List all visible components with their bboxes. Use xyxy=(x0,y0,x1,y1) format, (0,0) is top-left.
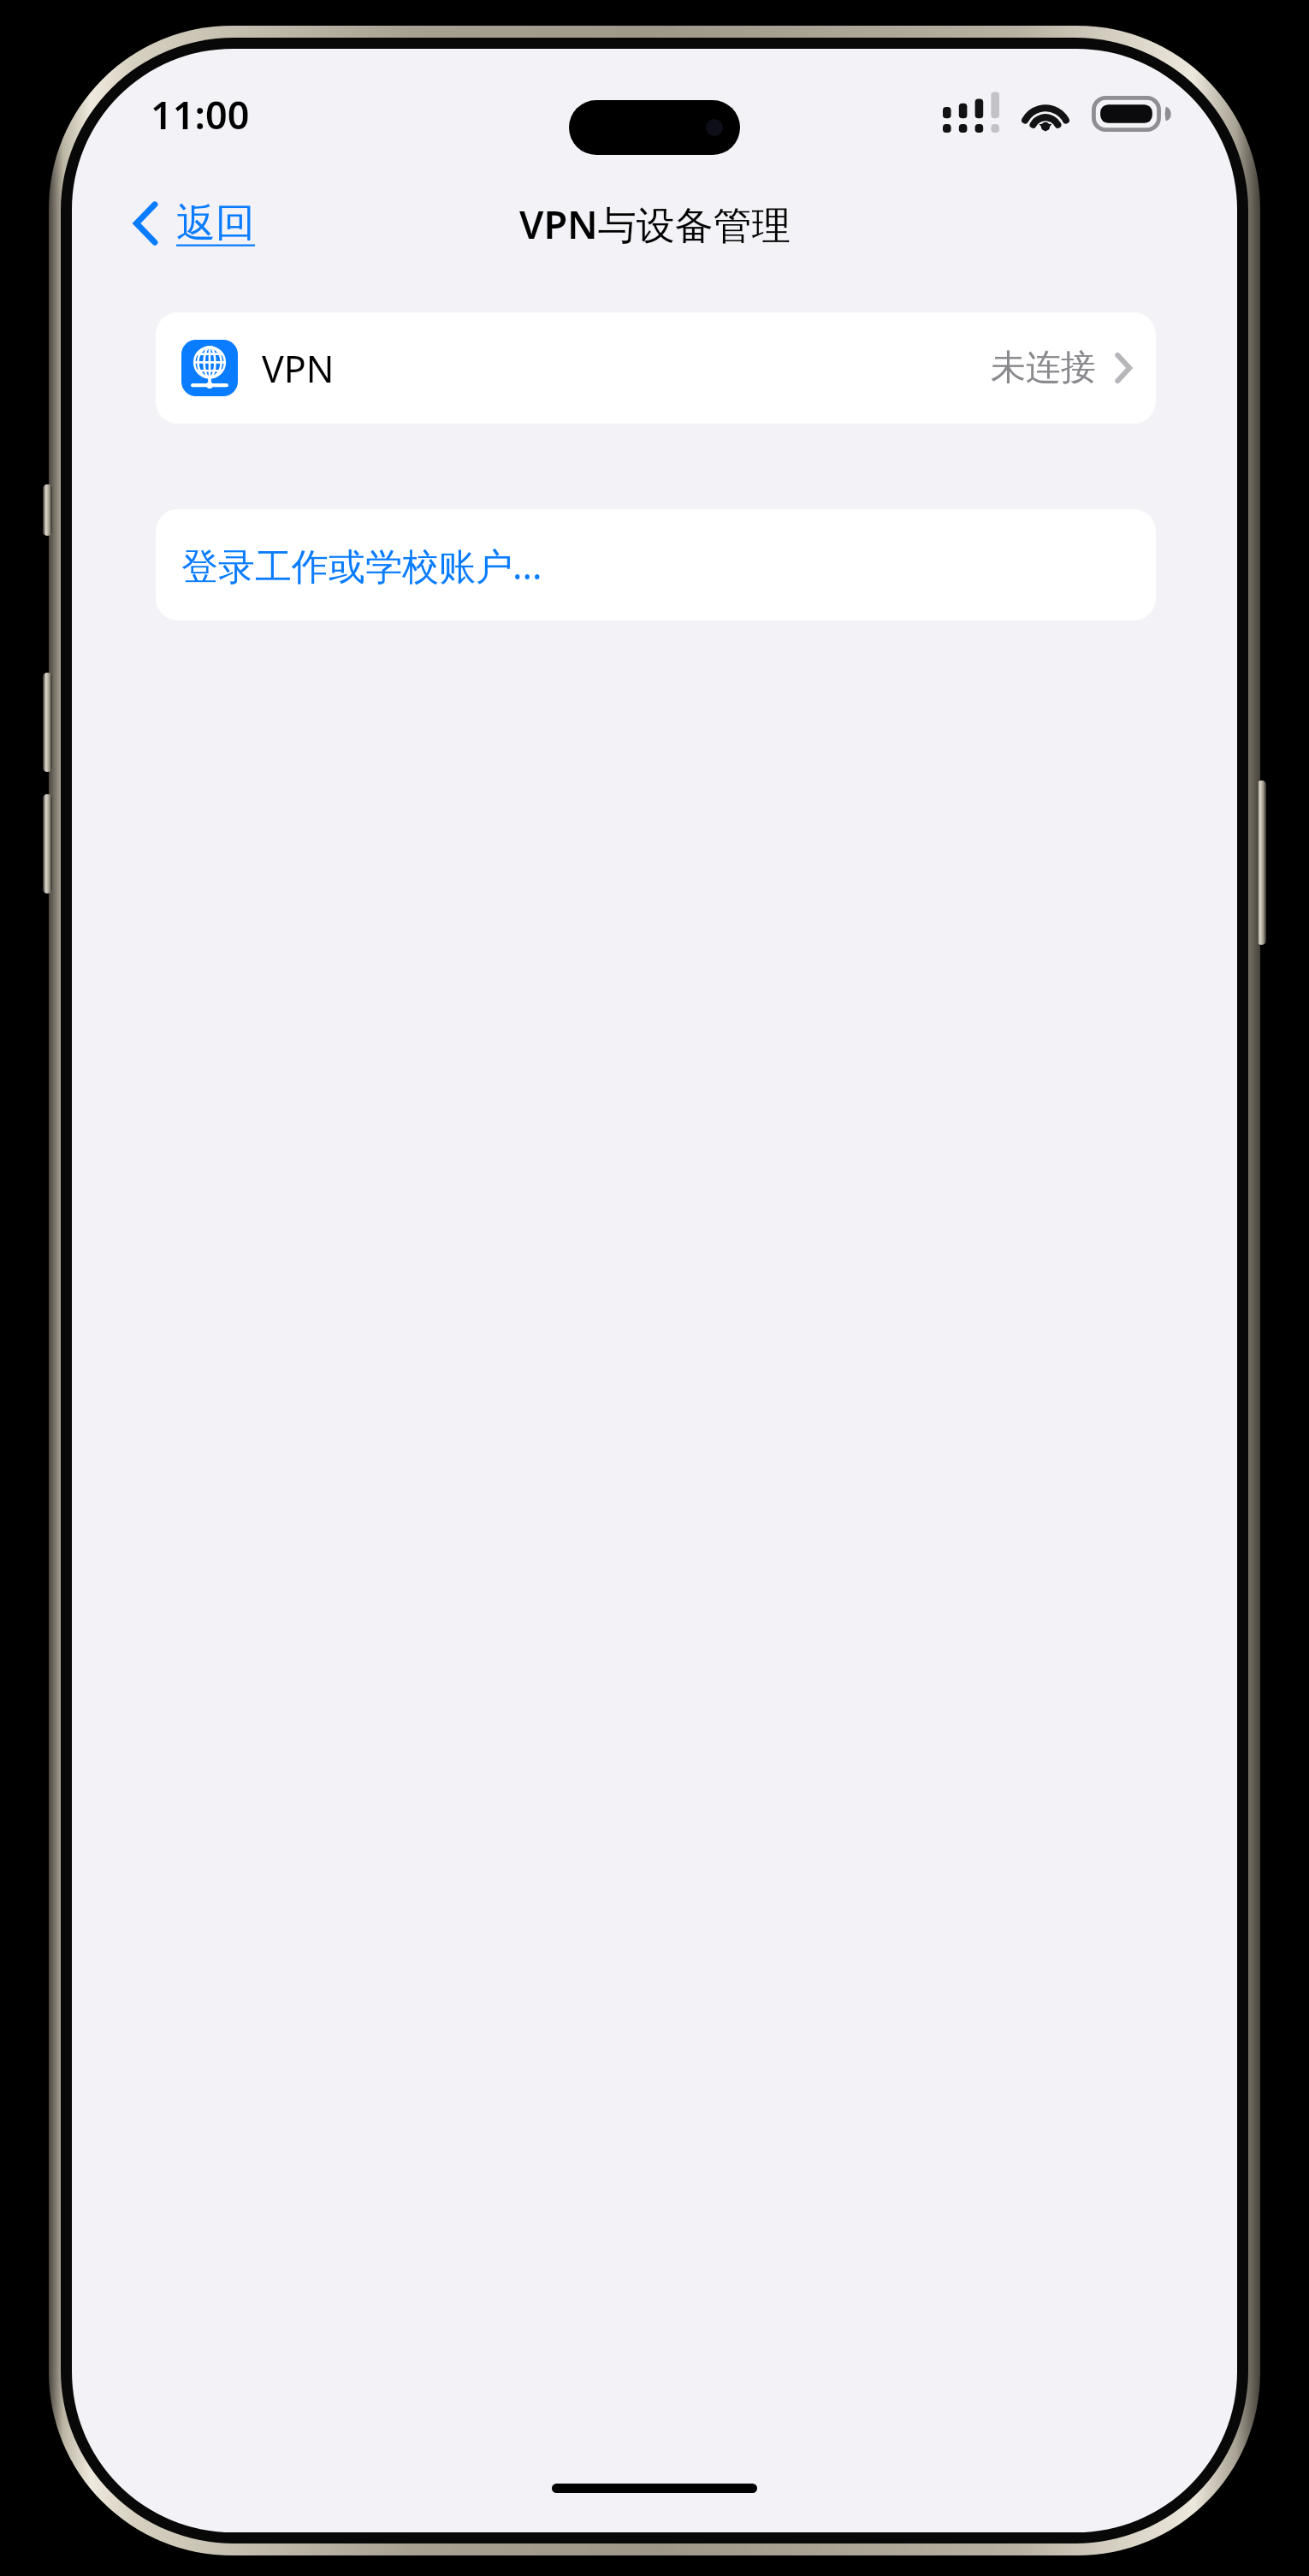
staticText: 未连接 xyxy=(991,346,1096,390)
button[interactable]: 返回 xyxy=(120,188,267,258)
button[interactable]: 登录工作或学校账户... xyxy=(156,509,1156,620)
staticText: 登录工作或学校账户... xyxy=(181,540,542,591)
staticText: VPN xyxy=(262,343,335,394)
button[interactable]: VPN xyxy=(156,312,1156,424)
other: 打开 VPN 设置 xyxy=(1115,353,1132,383)
staticText: 返回 xyxy=(176,199,255,248)
staticText: 11:00 xyxy=(151,88,250,140)
staticText: VPN与设备管理 xyxy=(519,198,791,250)
